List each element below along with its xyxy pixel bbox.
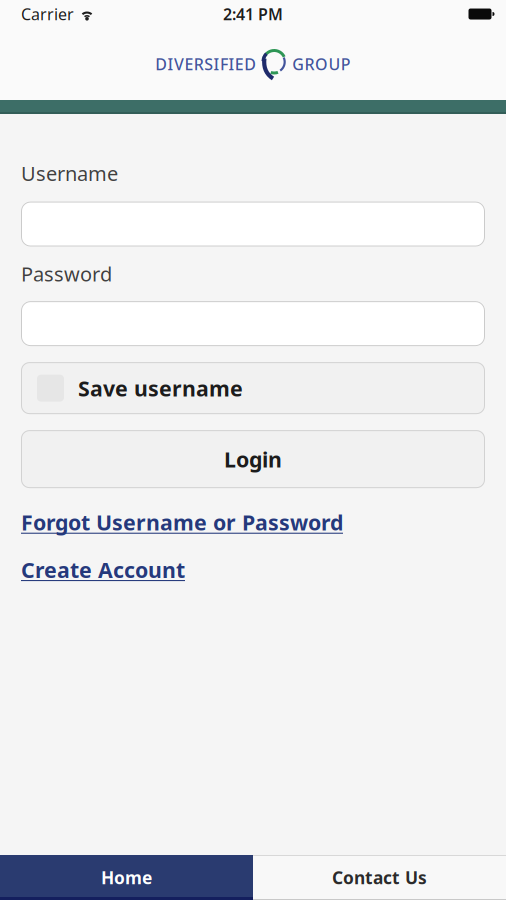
- staticText: Login: [224, 445, 282, 473]
- staticText: DIVERSIFIED: [155, 53, 256, 75]
- staticText: Carrier: [21, 3, 74, 25]
- staticText: 2:41 PM: [223, 3, 283, 25]
- staticText: Contact Us: [332, 866, 427, 889]
- staticText: Save username: [78, 374, 243, 402]
- button[interactable]: Forgot Username or Password: [21, 508, 343, 536]
- button[interactable]: Username: [21, 202, 485, 247]
- button[interactable]: Login: [21, 430, 485, 488]
- staticText: Create Account: [21, 555, 185, 584]
- staticText: Password: [21, 261, 112, 287]
- staticText: Home: [101, 866, 152, 889]
- button[interactable]: Contact Us: [253, 855, 506, 900]
- button[interactable]: Password: [21, 301, 485, 346]
- button[interactable]: Create Account: [21, 555, 185, 584]
- staticText: Forgot Username or Password: [21, 508, 343, 536]
- staticText: GROUP: [292, 53, 351, 75]
- staticText: Username: [21, 160, 118, 187]
- button[interactable]: Home: [0, 855, 253, 900]
- button[interactable]: Save username: [21, 362, 485, 414]
